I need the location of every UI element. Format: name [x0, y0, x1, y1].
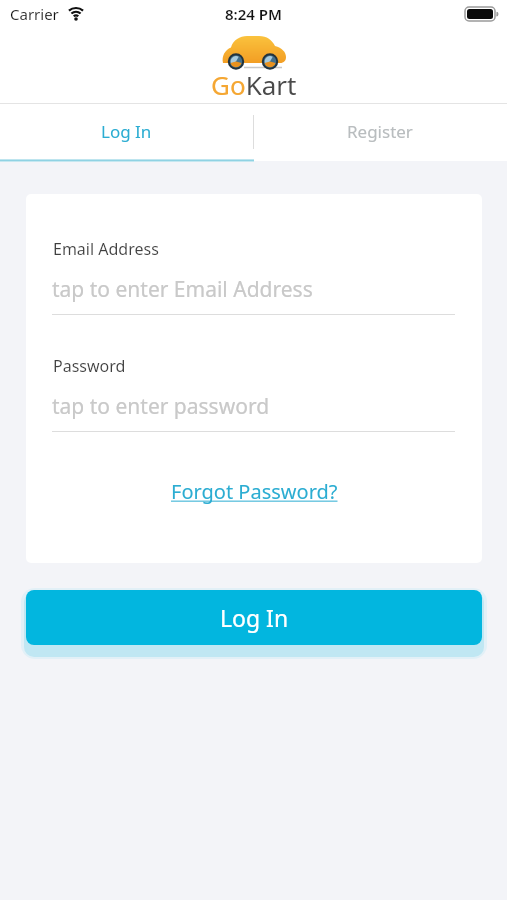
button[interactable]: tap to enter password	[52, 392, 455, 431]
staticText: tap to enter password	[52, 392, 270, 421]
button[interactable]: Forgot Password?	[171, 478, 338, 505]
staticText: 8:24 PM	[225, 4, 282, 24]
staticText: tap to enter Email Address	[52, 275, 313, 304]
staticText: Forgot Password?	[171, 478, 338, 505]
button[interactable]: Log In	[26, 590, 482, 645]
button[interactable]: Log In	[0, 103, 253, 160]
button[interactable]: Register	[253, 103, 507, 160]
staticText: Register	[347, 120, 413, 143]
staticText: Log In	[220, 602, 289, 633]
staticText: Carrier	[10, 4, 59, 24]
staticText: Password	[53, 355, 126, 377]
staticText: GoKart	[211, 67, 297, 102]
staticText: Email Address	[53, 238, 159, 260]
button[interactable]: tap to enter Email Address	[52, 275, 455, 314]
staticText: Log In	[101, 120, 152, 143]
